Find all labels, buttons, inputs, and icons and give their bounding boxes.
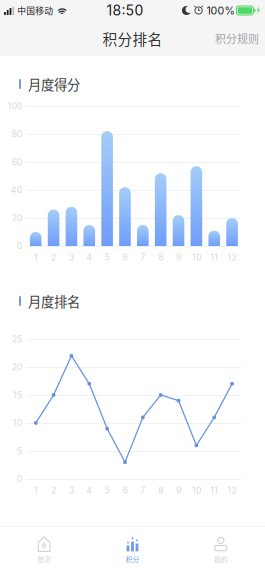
staticText: 首页 — [37, 554, 51, 564]
staticText: 6 — [122, 485, 127, 495]
staticText: 10 — [13, 418, 22, 428]
staticText: 10 — [192, 485, 201, 495]
staticText: 积分 — [125, 554, 139, 564]
staticText: 12 — [228, 485, 237, 495]
staticText: 月度排名 — [28, 291, 80, 311]
staticText: 15 — [13, 390, 22, 400]
staticText: 3 — [69, 485, 74, 495]
staticText: 月度得分 — [28, 74, 80, 94]
staticText: 10 — [192, 252, 201, 262]
staticText: 8 — [158, 485, 163, 495]
staticText: 4 — [86, 252, 92, 262]
staticText: 18:50 — [107, 2, 144, 19]
staticText: 4 — [86, 485, 92, 495]
staticText: 80 — [12, 129, 22, 139]
staticText: 6 — [122, 252, 127, 262]
staticText: 中国移动 — [17, 4, 53, 17]
staticText: 0 — [17, 241, 22, 251]
button[interactable]: 积分规则 — [207, 24, 265, 53]
staticText: 5 — [105, 485, 110, 495]
staticText: 9 — [176, 485, 181, 495]
staticText: 7 — [140, 252, 145, 262]
staticText: 25 — [12, 334, 22, 344]
staticText: 12 — [228, 252, 237, 262]
staticText: 5 — [105, 252, 110, 262]
staticText: 7 — [140, 485, 145, 495]
staticText: 0 — [17, 474, 22, 484]
staticText: 100% — [206, 4, 234, 17]
staticText: 5 — [17, 446, 22, 456]
button[interactable]: 积分 — [88, 528, 177, 573]
staticText: 积分规则 — [215, 31, 259, 46]
staticText: 11 — [210, 485, 218, 495]
staticText: 积分排名 — [102, 28, 162, 49]
staticText: 1 — [34, 252, 38, 262]
staticText: 2 — [51, 485, 56, 495]
button[interactable]: 首页 — [0, 528, 88, 573]
button[interactable]: 我的 — [177, 528, 265, 573]
staticText: 8 — [158, 252, 163, 262]
staticText: 2 — [51, 252, 56, 262]
staticText: 40 — [11, 185, 22, 195]
staticText: 11 — [210, 252, 218, 262]
staticText: 9 — [176, 252, 181, 262]
staticText: 我的 — [214, 554, 228, 564]
staticText: 1 — [34, 485, 38, 495]
staticText: 3 — [69, 252, 74, 262]
staticText: 20 — [12, 213, 22, 223]
staticText: 20 — [12, 362, 22, 372]
staticText: 100 — [8, 101, 22, 111]
staticText: 60 — [12, 157, 22, 167]
